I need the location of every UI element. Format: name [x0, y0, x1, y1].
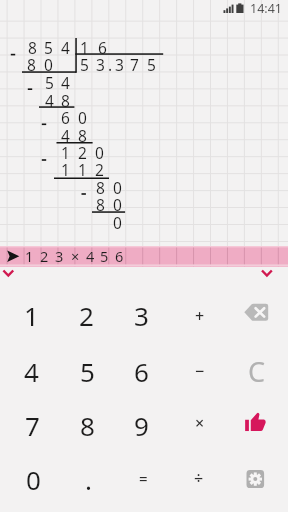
staticText: 14:41: [250, 0, 282, 17]
staticText: 7: [25, 408, 40, 443]
staticText: ÷: [194, 467, 204, 489]
staticText: 2: [40, 246, 49, 266]
staticText: .: [108, 54, 113, 75]
staticText: 8: [28, 37, 37, 58]
staticText: 0: [26, 462, 41, 497]
staticText: ×: [195, 412, 205, 434]
staticText: 0: [113, 194, 122, 215]
staticText: 1: [25, 246, 34, 266]
staticText: 8: [80, 408, 95, 443]
button[interactable]: 4: [4, 344, 58, 398]
staticText: =: [139, 468, 148, 488]
staticText: 4: [61, 72, 70, 93]
button[interactable]: [228, 289, 282, 343]
staticText: 8: [27, 54, 36, 75]
staticText: 6: [115, 246, 124, 266]
staticText: 9: [134, 408, 149, 443]
staticText: −: [195, 360, 205, 382]
staticText: 8: [78, 125, 87, 146]
staticText: 3: [96, 54, 105, 75]
staticText: 2: [78, 142, 87, 163]
button[interactable]: 7: [5, 398, 59, 452]
staticText: 2: [79, 298, 94, 333]
staticText: 4: [45, 90, 54, 111]
staticText: 3: [134, 298, 149, 333]
staticText: 5: [44, 37, 53, 58]
button[interactable]: 2: [59, 288, 113, 342]
staticText: 6: [134, 354, 149, 389]
button[interactable]: [0, 267, 22, 281]
staticText: 8: [96, 177, 105, 198]
staticText: 4: [61, 37, 70, 58]
staticText: 3: [115, 54, 124, 75]
staticText: 0: [44, 54, 53, 75]
staticText: 0: [95, 142, 104, 163]
staticText: 1: [61, 159, 70, 180]
staticText: .: [85, 462, 92, 497]
staticText: 0: [113, 212, 122, 233]
staticText: +: [195, 305, 205, 327]
staticText: 6: [61, 107, 70, 128]
button[interactable]: 0: [6, 452, 60, 506]
staticText: 1: [78, 159, 87, 180]
staticText: 0: [113, 177, 122, 198]
staticText: 5: [147, 54, 156, 75]
button[interactable]: +: [173, 289, 227, 343]
button[interactable]: 3: [114, 288, 168, 342]
staticText: 5: [45, 72, 54, 93]
staticText: 4: [24, 354, 39, 389]
staticText: 1: [24, 298, 39, 333]
button[interactable]: [229, 397, 283, 451]
staticText: ×: [71, 246, 80, 266]
button[interactable]: [229, 452, 283, 506]
button[interactable]: 1: [4, 288, 58, 342]
staticText: 3: [55, 246, 64, 266]
button[interactable]: 6: [114, 344, 168, 398]
staticText: 5: [100, 246, 109, 266]
staticText: 1: [61, 142, 70, 163]
staticText: 6: [98, 37, 107, 58]
button[interactable]: 5: [60, 344, 114, 398]
button[interactable]: [0, 246, 288, 267]
staticText: 1: [80, 37, 89, 58]
button[interactable]: ×: [173, 396, 227, 450]
staticText: 5: [80, 54, 89, 75]
staticText: 5: [80, 354, 95, 389]
staticText: 8: [96, 194, 105, 215]
button[interactable]: [256, 267, 278, 281]
staticText: 7: [130, 54, 139, 75]
staticText: 8: [61, 90, 70, 111]
button[interactable]: 9: [114, 398, 168, 452]
button[interactable]: ÷: [172, 451, 226, 505]
button[interactable]: =: [116, 451, 170, 505]
staticText: 4: [86, 246, 95, 266]
staticText: 4: [61, 125, 70, 146]
button[interactable]: .: [61, 452, 115, 506]
button[interactable]: −: [173, 344, 227, 398]
staticText: 2: [95, 159, 104, 180]
button[interactable]: 8: [60, 398, 114, 452]
staticText: C: [248, 353, 266, 390]
button[interactable]: C: [230, 344, 284, 398]
staticText: 0: [78, 107, 87, 128]
